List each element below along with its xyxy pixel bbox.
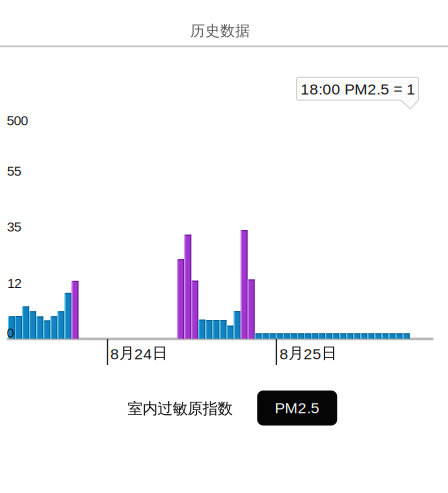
staticText: 12 — [7, 276, 21, 291]
staticText: 8月24日 — [110, 343, 167, 363]
staticText: 500 — [7, 113, 28, 128]
button[interactable]: PM2.5 — [257, 390, 337, 425]
staticText: PM2.5 — [275, 399, 320, 416]
staticText: 35 — [7, 219, 21, 234]
staticText: 0 — [7, 325, 14, 340]
staticText: 55 — [7, 164, 21, 179]
staticText: 18:00 PM2.5 = 1 — [300, 81, 415, 98]
button[interactable]: 室内过敏原指数 — [127, 399, 232, 418]
staticText: 历史数据 — [190, 22, 250, 40]
staticText: 8月25日 — [279, 343, 336, 363]
staticText: 室内过敏原指数 — [127, 399, 232, 418]
